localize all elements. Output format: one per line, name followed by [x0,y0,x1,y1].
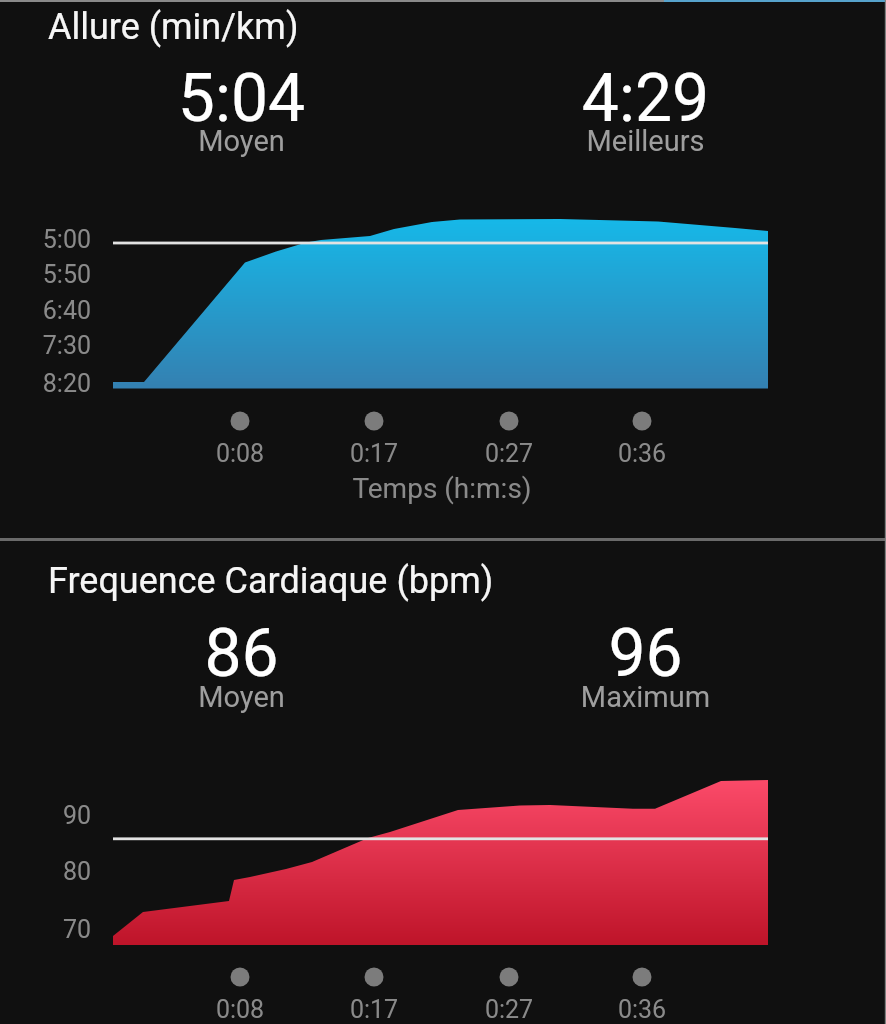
staticText: 5:50 [0,260,91,289]
staticText: Moyen [0,124,483,158]
staticText: 8:20 [0,369,91,398]
staticText: 0:17 [314,995,434,1024]
other: Loading progress [0,0,886,2]
staticText: 90 [0,801,91,830]
staticText: 5:00 [0,225,91,254]
staticText: 80 [0,857,91,886]
staticText: 0:17 [314,439,434,468]
staticText: 5:04 [0,60,483,137]
staticText: 0:36 [582,995,702,1024]
staticText: Maximum [404,680,886,714]
staticText: 0:36 [582,439,702,468]
staticText: 0:27 [449,439,569,468]
staticText: 70 [0,915,91,944]
staticText: 0:27 [449,995,569,1024]
staticText: 86 [0,615,483,692]
button[interactable]: Allure (min/km) [0,0,886,538]
staticText: Frequence Cardiaque (bpm) [48,560,494,602]
staticText: 4:29 [404,60,886,137]
staticText: Temps (h:m:s) [322,472,562,505]
staticText: 7:30 [0,331,91,360]
staticText: 6:40 [0,296,91,325]
staticText: Allure (min/km) [48,6,299,48]
staticText: 0:08 [180,439,300,468]
button[interactable]: Frequence Cardiaque (bpm) [0,540,886,1024]
staticText: 0:08 [180,995,300,1024]
staticText: Meilleurs [404,124,886,158]
staticText: Moyen [0,680,483,714]
staticText: 96 [404,615,886,692]
